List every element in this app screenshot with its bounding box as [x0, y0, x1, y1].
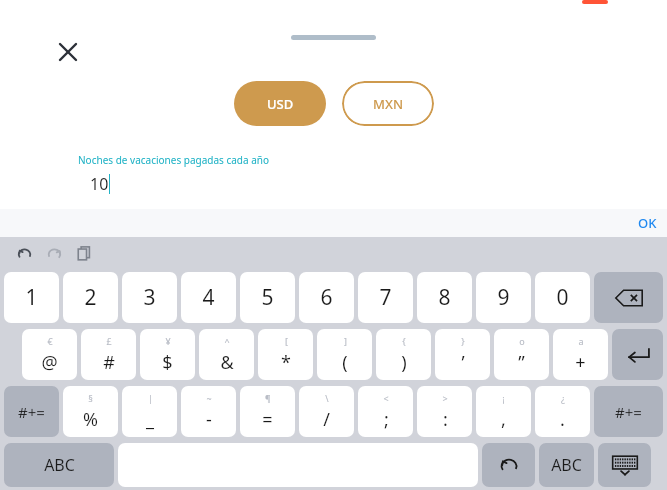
staticText: 0: [556, 283, 569, 312]
staticText: /: [323, 407, 330, 432]
staticText: ): [401, 350, 407, 375]
button[interactable]: ABC: [4, 443, 114, 487]
button[interactable]: §: [63, 386, 118, 437]
button[interactable]: o: [494, 329, 549, 380]
staticText: 8: [438, 283, 451, 312]
button[interactable]: <: [358, 386, 413, 437]
staticText: :: [443, 407, 448, 432]
staticText: USD: [267, 95, 294, 113]
staticText: MXN: [373, 95, 403, 113]
staticText: %: [83, 407, 98, 432]
button[interactable]: 2: [63, 272, 118, 323]
staticText: _: [146, 407, 154, 432]
button[interactable]: £: [81, 329, 136, 380]
staticText: Noches de vacaciones pagadas cada año: [78, 153, 270, 167]
button[interactable]: ^: [199, 329, 254, 380]
button[interactable]: MXN: [342, 81, 434, 126]
button[interactable]: Close: [52, 36, 84, 68]
button[interactable]: ¥: [140, 329, 195, 380]
button[interactable]: 9: [476, 272, 531, 323]
button[interactable]: 7: [358, 272, 413, 323]
staticText: >: [442, 392, 448, 404]
staticText: 5: [261, 283, 274, 312]
button[interactable]: ¿: [535, 386, 590, 437]
staticText: -: [206, 407, 212, 432]
button[interactable]: >: [417, 386, 472, 437]
button[interactable]: #+=: [4, 386, 59, 437]
staticText: #: [103, 350, 115, 375]
button[interactable]: ]: [317, 329, 372, 380]
button[interactable]: 3: [122, 272, 177, 323]
button[interactable]: [: [258, 329, 313, 380]
button[interactable]: OK: [638, 214, 657, 232]
staticText: 1: [25, 283, 38, 312]
staticText: ’: [461, 350, 465, 375]
staticText: OK: [638, 214, 657, 232]
button[interactable]: Enter: [612, 329, 663, 380]
staticText: ,: [501, 407, 506, 432]
staticText: @: [41, 350, 58, 375]
staticText: 3: [143, 283, 156, 312]
button[interactable]: \: [299, 386, 354, 437]
staticText: *: [281, 350, 291, 375]
staticText: 10: [90, 173, 109, 195]
staticText: o: [519, 335, 525, 347]
button[interactable]: 4: [181, 272, 236, 323]
staticText: ¶: [265, 392, 271, 404]
button[interactable]: 6: [299, 272, 354, 323]
staticText: ^: [224, 335, 230, 347]
staticText: ¡: [502, 392, 505, 404]
staticText: ABC: [44, 454, 75, 476]
button[interactable]: |: [122, 386, 177, 437]
staticText: $: [162, 350, 173, 375]
staticText: ]: [344, 335, 347, 347]
staticText: 7: [379, 283, 392, 312]
staticText: +: [575, 350, 586, 375]
button[interactable]: {: [376, 329, 431, 380]
staticText: }: [461, 335, 465, 347]
button[interactable]: }: [435, 329, 490, 380]
button[interactable]: 0: [535, 272, 590, 323]
staticText: (: [342, 350, 348, 375]
button[interactable]: €: [22, 329, 77, 380]
staticText: £: [106, 335, 112, 347]
staticText: [: [285, 335, 288, 347]
button[interactable]: Copy: [70, 239, 98, 267]
button[interactable]: ¡: [476, 386, 531, 437]
staticText: \: [325, 392, 329, 404]
staticText: 9: [497, 283, 510, 312]
staticText: #+=: [615, 402, 642, 422]
button[interactable]: ~: [181, 386, 236, 437]
button[interactable]: Undo: [482, 443, 535, 487]
staticText: €: [47, 335, 53, 347]
staticText: #+=: [18, 402, 45, 422]
staticText: ;: [384, 407, 389, 432]
button[interactable]: Backspace: [594, 272, 663, 323]
staticText: ¥: [165, 335, 171, 347]
staticText: {: [402, 335, 406, 347]
staticText: ~: [206, 392, 212, 404]
button[interactable]: USD: [234, 81, 326, 126]
button[interactable]: ABC: [539, 443, 594, 487]
staticText: §: [88, 392, 93, 404]
button[interactable]: Undo: [10, 239, 38, 267]
staticText: ¿: [561, 392, 565, 404]
staticText: ”: [518, 350, 525, 375]
staticText: 4: [202, 283, 215, 312]
button[interactable]: a: [553, 329, 608, 380]
staticText: <: [383, 392, 389, 404]
staticText: 2: [84, 283, 97, 312]
button[interactable]: Hide keyboard: [598, 443, 651, 487]
button[interactable]: Redo: [40, 239, 68, 267]
button[interactable]: 5: [240, 272, 295, 323]
staticText: |: [148, 392, 153, 404]
button[interactable]: ¶: [240, 386, 295, 437]
button[interactable]: 1: [4, 272, 59, 323]
staticText: &: [220, 350, 234, 375]
staticText: ABC: [551, 454, 582, 476]
button[interactable]: #+=: [594, 386, 663, 437]
staticText: 6: [320, 283, 333, 312]
staticText: .: [560, 407, 565, 432]
button[interactable]: 8: [417, 272, 472, 323]
